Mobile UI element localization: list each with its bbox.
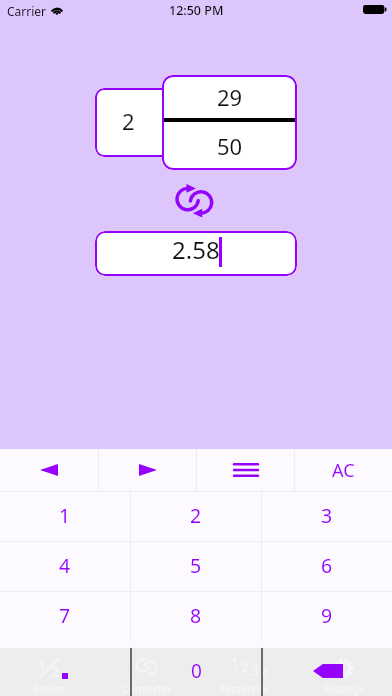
staticText: Carrier bbox=[7, 3, 47, 19]
button[interactable]: 50 bbox=[162, 122, 297, 170]
button[interactable]: 0 bbox=[132, 648, 261, 696]
button[interactable]: 1 bbox=[196, 648, 294, 696]
staticText: 6 bbox=[321, 552, 333, 579]
staticText: Solver bbox=[33, 682, 65, 696]
staticText: 1 bbox=[231, 653, 240, 672]
staticText: Settings bbox=[323, 682, 364, 696]
button[interactable]: Menu bbox=[197, 449, 294, 491]
button[interactable]: 4 bbox=[0, 542, 130, 591]
button[interactable]: 7 bbox=[0, 592, 130, 641]
staticText: 1 bbox=[59, 502, 71, 529]
button[interactable]: Next bbox=[99, 449, 196, 491]
staticText: 8 bbox=[190, 602, 202, 629]
staticText: 9 bbox=[321, 602, 333, 629]
staticText: 12:50 PM bbox=[169, 2, 224, 19]
staticText: AC bbox=[332, 458, 355, 483]
button[interactable]: 2.58 bbox=[95, 231, 297, 276]
staticText: 3 bbox=[321, 502, 333, 529]
button[interactable]: Settings bbox=[294, 648, 392, 696]
staticText: 4 bbox=[59, 552, 71, 579]
button[interactable]: 8 bbox=[131, 592, 261, 641]
staticText: 29 bbox=[217, 82, 243, 112]
button[interactable]: 5 bbox=[131, 542, 261, 591]
button[interactable]: 2 bbox=[95, 88, 173, 157]
staticText: 0 bbox=[191, 658, 202, 684]
staticText: 4 bbox=[261, 665, 268, 681]
button[interactable]: 6 bbox=[262, 542, 392, 591]
button[interactable]: Converter bbox=[98, 648, 196, 696]
button[interactable]: Previous bbox=[0, 449, 98, 491]
button[interactable]: 3 bbox=[262, 492, 392, 541]
button[interactable]: 2 bbox=[131, 492, 261, 541]
button[interactable]: 9 bbox=[262, 592, 392, 641]
staticText: 2 bbox=[51, 662, 60, 681]
button[interactable]: AC bbox=[295, 449, 392, 491]
button[interactable]: Swap bbox=[168, 176, 224, 224]
button[interactable]: Backspace bbox=[263, 648, 392, 696]
button[interactable]: 1 bbox=[0, 492, 130, 541]
staticText: 50 bbox=[217, 131, 243, 161]
staticText: 7 bbox=[59, 602, 71, 629]
button[interactable]: Decimal point bbox=[0, 648, 130, 696]
staticText: 2 bbox=[190, 502, 202, 529]
staticText: 1 bbox=[38, 656, 47, 675]
staticText: Converter bbox=[122, 682, 173, 696]
staticText: 2 bbox=[241, 658, 249, 676]
button[interactable]: 1 bbox=[0, 648, 98, 696]
staticText: 2.58 bbox=[172, 233, 220, 266]
staticText: 3 bbox=[251, 661, 259, 679]
staticText: 2 bbox=[122, 106, 135, 136]
staticText: Factoriser bbox=[220, 682, 270, 696]
staticText: 5 bbox=[190, 552, 202, 579]
button[interactable]: 29 bbox=[162, 75, 297, 118]
